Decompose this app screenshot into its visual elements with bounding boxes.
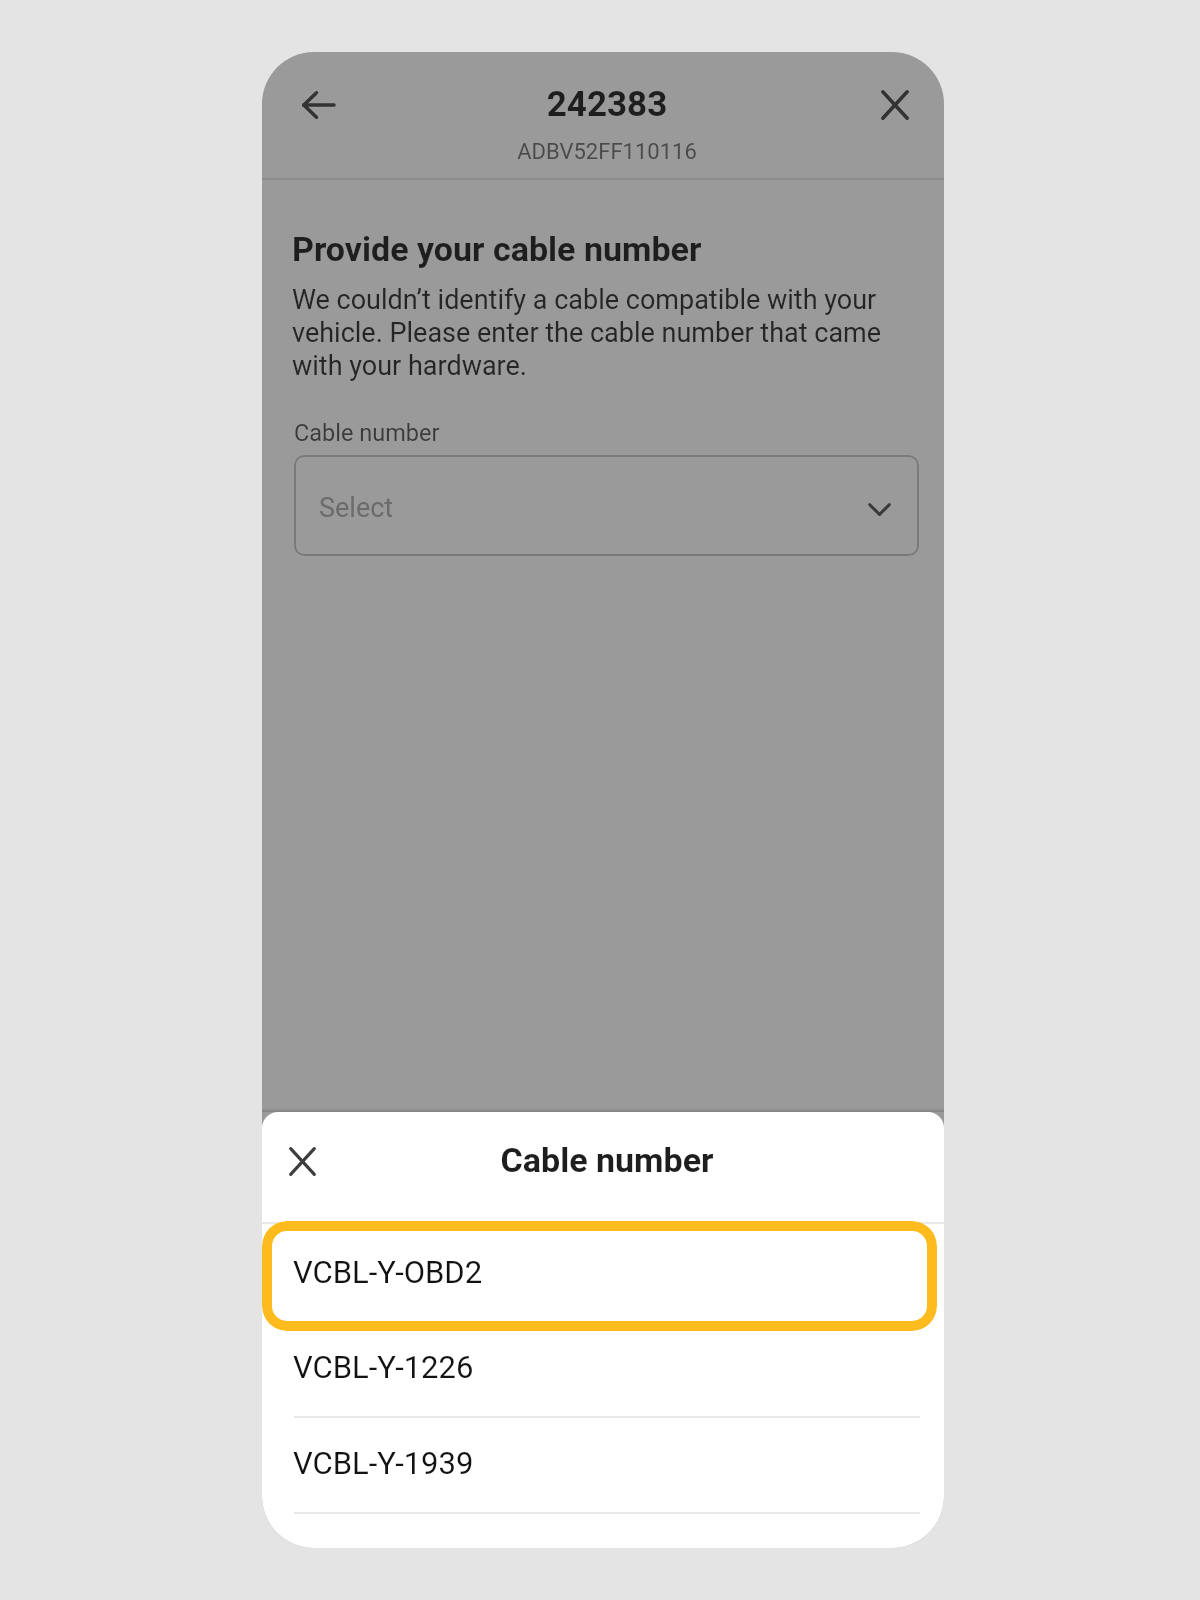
button[interactable]: Select xyxy=(294,455,919,556)
staticText: 242383 xyxy=(266,84,944,125)
button[interactable]: Close xyxy=(861,71,929,139)
staticText: Cable number xyxy=(294,419,440,447)
staticText: Provide your cable number xyxy=(292,229,918,269)
button[interactable]: Back xyxy=(284,71,352,139)
button[interactable]: VCBL-Y-1226 xyxy=(262,1322,944,1418)
staticText: We couldn’t identify a cable compatible … xyxy=(292,284,912,382)
button[interactable]: VCBL-Y-1939 xyxy=(262,1418,944,1514)
button[interactable]: Close xyxy=(268,1127,336,1195)
staticText: Cable number xyxy=(266,1140,944,1180)
staticText: VCBL-Y-OBD2 xyxy=(293,1254,483,1290)
staticText: ADBV52FF110116 xyxy=(266,139,944,165)
staticText: VCBL-Y-1939 xyxy=(293,1445,474,1481)
button[interactable]: VCBL-Y-OBD2 xyxy=(262,1221,937,1331)
staticText: VCBL-Y-1226 xyxy=(293,1349,474,1385)
staticText: Select xyxy=(319,492,394,524)
